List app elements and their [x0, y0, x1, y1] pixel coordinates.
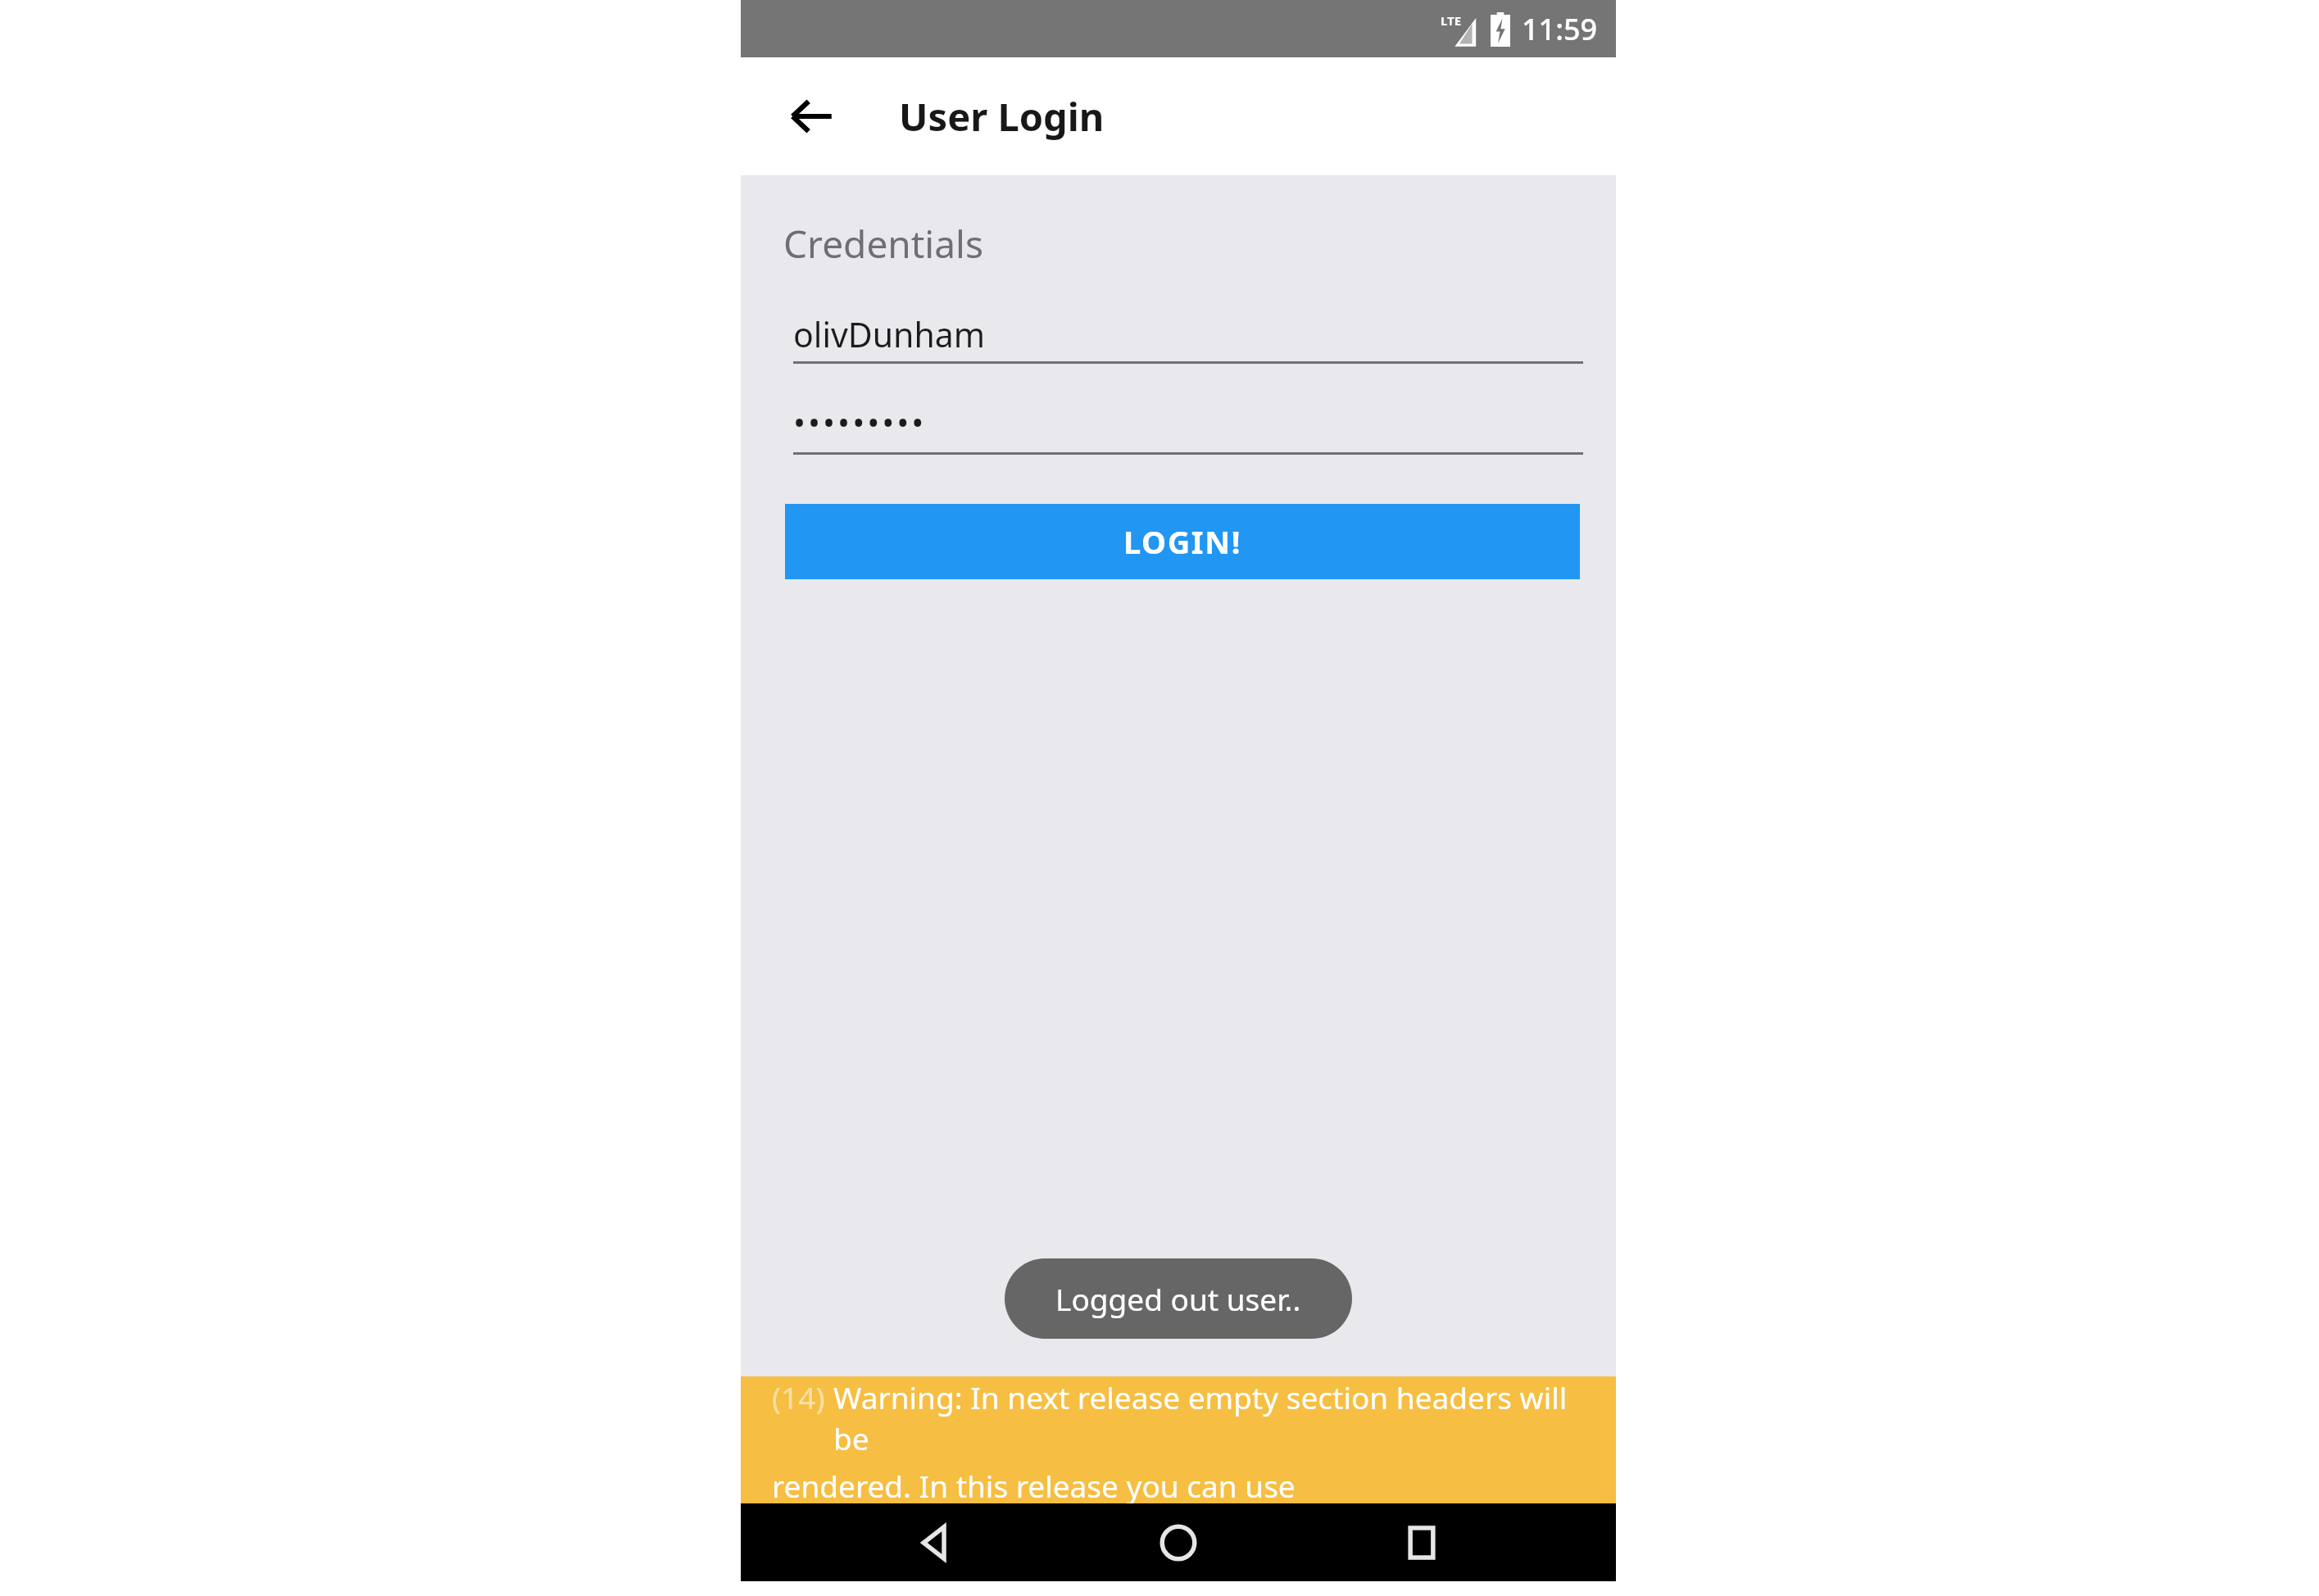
button[interactable]: Password: [793, 398, 1583, 455]
button[interactable]: LOGIN!: [785, 504, 1580, 579]
staticText: •••••••••: [793, 400, 927, 444]
staticText: 11:59: [1522, 9, 1598, 49]
button[interactable]: Recent apps: [1373, 1503, 1471, 1581]
button[interactable]: Back: [886, 1503, 984, 1581]
button[interactable]: Username: [793, 307, 1583, 364]
staticText: (14): [772, 1376, 833, 1417]
staticText: Credentials: [783, 218, 983, 270]
staticText: Warning: In next release empty section h…: [833, 1376, 1601, 1458]
button[interactable]: (14): [741, 1376, 1616, 1503]
staticText: Logged out user..: [1055, 1278, 1301, 1319]
button[interactable]: Back: [775, 79, 849, 153]
staticText: User Login: [899, 90, 1105, 143]
button[interactable]: Home: [1129, 1503, 1228, 1581]
staticText: olivDunham: [793, 311, 986, 357]
staticText: LOGIN!: [1123, 520, 1242, 563]
staticText: LTE: [1441, 12, 1462, 29]
staticText: rendered. In this release you can use 'e…: [772, 1465, 1601, 1503]
